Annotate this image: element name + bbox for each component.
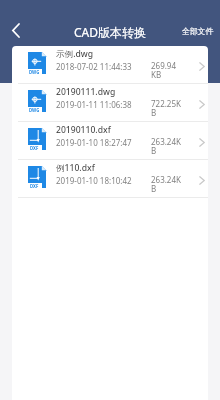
staticText: 263.24K B: [151, 174, 181, 195]
button[interactable]: Back: [2, 17, 29, 44]
button[interactable]: 全部文件: [182, 26, 214, 36]
staticText: 2019-01-10 18:10:42: [56, 175, 132, 186]
staticText: 722.25K B: [151, 98, 181, 119]
staticText: 20190110.dxf: [56, 124, 111, 136]
button[interactable]: DWG: [12, 46, 208, 83]
staticText: 2019-01-11 11:06:38: [56, 99, 132, 110]
staticText: DWG: [29, 69, 40, 74]
staticText: DXF: [30, 183, 39, 188]
staticText: 263.24K B: [151, 136, 181, 157]
staticText: CAD版本转换: [74, 24, 147, 40]
staticText: 2019-01-10 18:27:47: [56, 137, 132, 148]
staticText: 20190111.dwg: [56, 86, 116, 98]
staticText: 示例.dwg: [56, 48, 94, 60]
staticText: 269.94 KB: [151, 60, 177, 81]
staticText: 例110.dxf: [56, 162, 95, 174]
staticText: 2018-07-02 11:44:33: [56, 61, 132, 72]
staticText: DXF: [30, 145, 39, 150]
staticText: 全部文件: [182, 26, 214, 36]
button[interactable]: DXF: [12, 122, 208, 159]
button[interactable]: DXF: [12, 160, 208, 197]
button[interactable]: DWG: [12, 84, 208, 121]
staticText: DWG: [29, 107, 40, 112]
